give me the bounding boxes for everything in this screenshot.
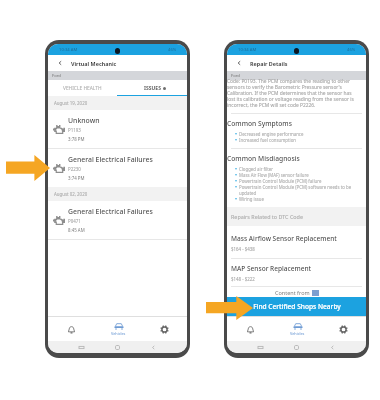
button[interactable]: VEHICLE HEALTH: [48, 80, 117, 96]
button[interactable]: Unknown: [48, 110, 187, 148]
button[interactable]: Vehicles: [274, 317, 320, 341]
button[interactable]: Settings: [320, 317, 366, 341]
button[interactable]: Back: [227, 55, 250, 71]
button[interactable]: Alerts: [48, 317, 95, 341]
staticText: Content from: [275, 289, 310, 296]
staticText: MAP Sensor Replacement: [231, 264, 312, 273]
staticText: 3:74 PM: [68, 175, 85, 181]
staticText: Decreased engine performance: [239, 131, 304, 137]
staticText: Unknown: [68, 116, 100, 125]
staticText: Wiring issue: [239, 196, 264, 202]
staticText: VEHICLE HEALTH: [63, 85, 102, 92]
staticText: August 02, 2020: [54, 191, 88, 197]
staticText: Ford: [231, 73, 240, 79]
button[interactable]: Settings: [141, 317, 187, 341]
staticText: Code: P0193. The PCM compares the readin…: [227, 78, 361, 108]
staticText: 8:45 AM: [68, 227, 85, 233]
staticText: Repair Details: [250, 60, 288, 67]
staticText: Common Misdiagnosis: [227, 154, 300, 163]
staticText: 10:34 AM: [238, 47, 257, 53]
staticText: Increased fuel consumption: [239, 137, 296, 143]
staticText: Vehicles: [111, 331, 126, 336]
staticText: $148 - $222: [231, 276, 255, 282]
staticText: ISSUES: [144, 85, 161, 92]
staticText: Virtual Mechanic: [71, 60, 117, 67]
button[interactable]: Vehicles: [95, 317, 141, 341]
staticText: Find Certified Shops Nearby: [253, 302, 341, 311]
staticText: 10:34 AM: [59, 47, 78, 53]
staticText: P2230: [68, 166, 81, 172]
staticText: Mass Air Flow (MAF) sensor failure: [239, 172, 309, 178]
button[interactable]: Find Certified Shops Nearby: [227, 297, 366, 316]
button[interactable]: General Electrical Failures: [48, 201, 187, 239]
button[interactable]: Back: [48, 55, 71, 71]
staticText: August 19, 2020: [54, 100, 88, 106]
staticText: Powertrain Control Module (PCM) software…: [239, 184, 360, 196]
staticText: 46%: [347, 47, 356, 53]
staticText: Vehicles: [290, 331, 305, 336]
staticText: 46%: [168, 47, 177, 53]
staticText: Powertrain Control Module (PCM) failure: [239, 178, 322, 184]
staticText: Ford: [52, 73, 61, 79]
staticText: $164 - $438: [231, 246, 255, 252]
staticText: P0471: [68, 218, 81, 224]
button[interactable]: Alerts: [227, 317, 274, 341]
staticText: General Electrical Failures: [68, 155, 153, 164]
staticText: P1193: [68, 127, 81, 133]
staticText: Clogged air filter: [239, 166, 274, 172]
button[interactable]: General Electrical Failures: [48, 149, 187, 187]
button[interactable]: ISSUES: [117, 80, 187, 96]
staticText: Mass Airflow Sensor Replacement: [231, 234, 337, 243]
staticText: Common Symptoms: [227, 119, 292, 128]
staticText: 3:78 PM: [68, 136, 85, 142]
staticText: Repairs Related to DTC Code: [231, 213, 303, 220]
staticText: General Electrical Failures: [68, 207, 153, 216]
